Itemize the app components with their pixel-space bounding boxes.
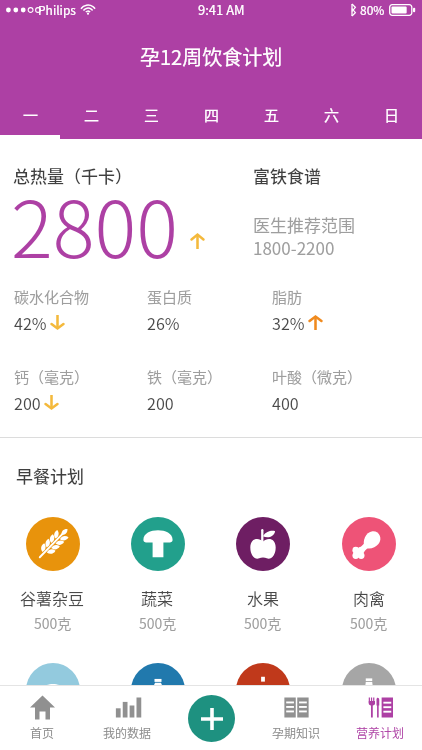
staticText: 脂肪 — [272, 286, 303, 308]
staticText: 孕12周饮食计划 — [140, 42, 283, 71]
staticText: 叶酸（微克） — [272, 366, 363, 388]
button[interactable]: 水 — [105, 663, 210, 750]
staticText: 42% — [14, 311, 47, 334]
button[interactable]: 六 — [302, 90, 362, 139]
staticText: 9:41 AM — [198, 0, 245, 19]
button[interactable]: 盐 — [316, 663, 422, 750]
staticText: 盐 — [361, 732, 378, 750]
button[interactable]: 蔬菜 — [105, 517, 210, 633]
staticText: 四 — [204, 104, 220, 126]
staticText: 五 — [264, 104, 280, 126]
button[interactable]: 水果 — [210, 517, 316, 633]
button[interactable]: 日 — [362, 90, 422, 139]
staticText: 500克 — [244, 613, 282, 633]
staticText: 500克 — [34, 613, 72, 633]
staticText: 三 — [144, 104, 160, 126]
staticText: 水果 — [247, 586, 280, 609]
staticText: 一 — [23, 104, 39, 126]
button[interactable]: 肉禽 — [316, 517, 422, 633]
staticText: 水 — [149, 732, 166, 750]
staticText: 2800 — [11, 168, 178, 281]
staticText: 总热量（千卡） — [13, 163, 132, 188]
staticText: 早餐计划 — [16, 463, 84, 488]
staticText: 蛋白质 — [147, 286, 193, 308]
staticText: Philips — [38, 1, 76, 18]
button[interactable]: 孕期知识 — [254, 685, 338, 750]
staticText: 500克 — [139, 613, 177, 633]
staticText: 谷薯杂豆 — [20, 586, 85, 609]
staticText: 孕期知识 — [272, 724, 321, 741]
staticText: 肉禽 — [353, 586, 386, 609]
staticText: 六 — [324, 104, 340, 126]
button[interactable]: 油 — [210, 663, 316, 750]
staticText: 首页 — [30, 724, 55, 741]
button[interactable]: 五 — [242, 90, 302, 139]
staticText: 26% — [147, 311, 180, 334]
staticText: 碳水化合物 — [14, 286, 90, 308]
button[interactable]: 一 — [0, 90, 61, 139]
staticText: 1800-2200 — [253, 235, 335, 260]
staticText: 蔬菜 — [141, 586, 174, 609]
staticText: 钙（毫克） — [14, 366, 90, 388]
staticText: 富铁食谱 — [253, 163, 321, 188]
staticText: 我的数据 — [103, 724, 152, 741]
button[interactable]: 谷薯杂豆 — [0, 517, 105, 633]
button[interactable]: Add — [188, 695, 235, 742]
staticText: 二 — [84, 104, 100, 126]
staticText: 200 — [14, 391, 41, 414]
staticText: 200 — [147, 391, 174, 414]
staticText: 400 — [272, 391, 299, 414]
button[interactable]: 三 — [122, 90, 182, 139]
staticText: 日 — [384, 104, 400, 126]
staticText: 营养计划 — [356, 724, 405, 741]
staticText: 医生推荐范围 — [253, 212, 355, 237]
button[interactable]: 二 — [61, 90, 122, 139]
staticText: 500克 — [350, 613, 388, 633]
button[interactable]: 首页 — [0, 685, 85, 750]
staticText: 奶类 — [36, 732, 69, 750]
button[interactable]: 我的数据 — [85, 685, 170, 750]
button[interactable]: 奶类 — [0, 663, 105, 750]
button[interactable]: 营养计划 — [338, 685, 422, 750]
staticText: 80% — [360, 1, 385, 18]
staticText: 铁（毫克） — [147, 366, 223, 388]
staticText: 32% — [272, 311, 305, 334]
button[interactable]: 四 — [182, 90, 242, 139]
